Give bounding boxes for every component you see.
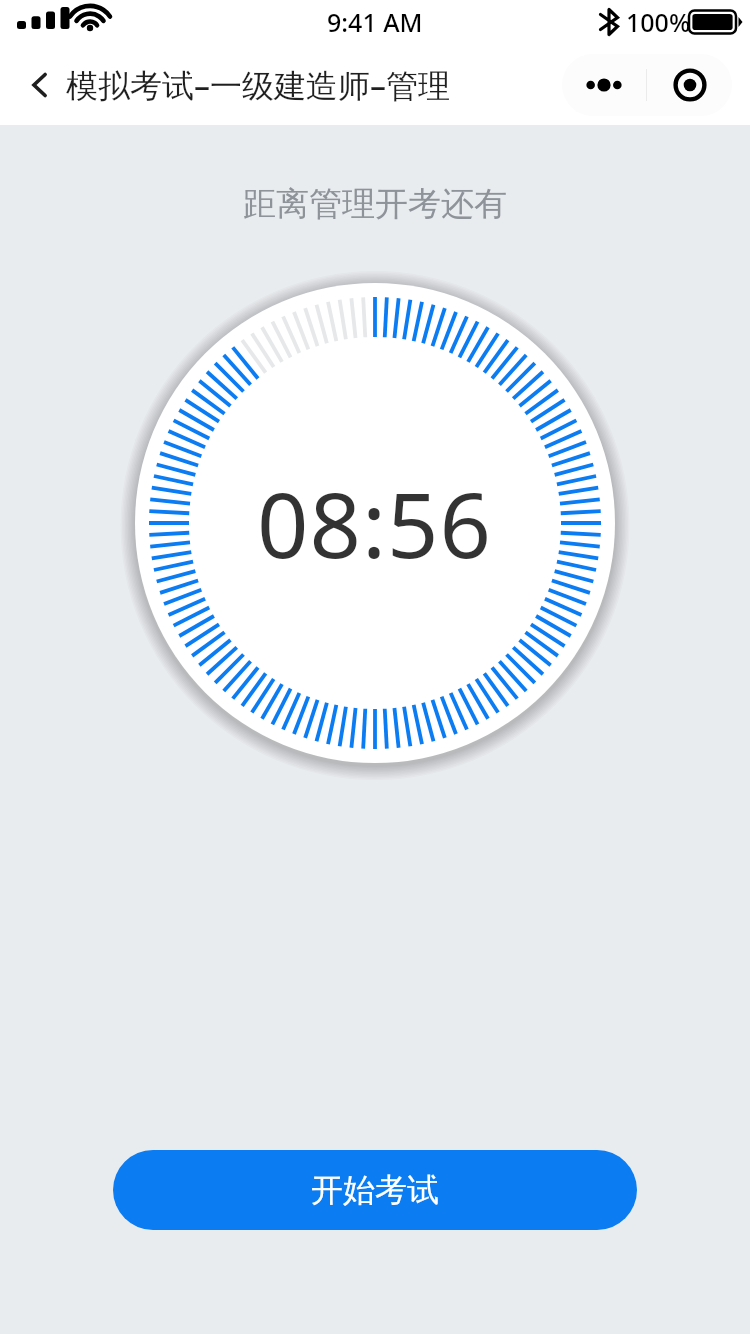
staticText: 开始考试 (311, 1170, 439, 1210)
button[interactable]: 关闭小程序 (647, 54, 732, 116)
button[interactable]: 开始考试 (113, 1150, 637, 1230)
staticText: 模拟考试–一级建造师–管理 (66, 63, 451, 107)
button[interactable]: 返回 (12, 57, 68, 113)
staticText: 100% (626, 5, 691, 39)
button[interactable]: 更多 (562, 54, 646, 116)
staticText: 08:56 (257, 462, 493, 585)
staticText: 距离管理开考还有 (0, 183, 750, 225)
staticText: 9:41 AM (327, 5, 423, 39)
